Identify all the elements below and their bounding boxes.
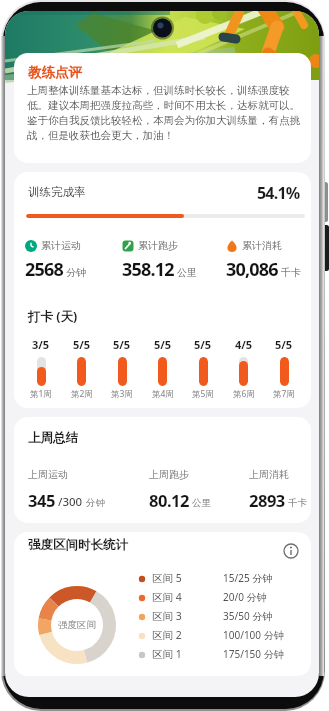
staticText: 强度区间时长统计 [28,537,128,553]
staticText: 第3周 [111,388,133,400]
staticText: 训练完成率 [28,185,86,199]
staticText: 上周总结 [28,430,78,446]
staticText: 5/5 [154,337,172,352]
staticText: 第7周 [273,388,295,400]
staticText: 4/5 [235,337,253,352]
staticText: 强度区间 [58,619,96,631]
staticText: 2568 [25,257,63,282]
staticText: 上周跑步 [149,468,189,481]
staticText: 分钟 [66,266,86,279]
staticText: 15/25 分钟 [223,571,273,585]
staticText: 区间 4 [152,590,182,604]
staticText: 5/5 [73,337,91,352]
staticText: 358.12 [122,257,174,282]
staticText: /300 [55,494,83,510]
staticText: 100/100 分钟 [223,628,284,642]
staticText: 80.12 [149,489,189,511]
staticText: 第5周 [192,388,214,400]
staticText: 第4周 [152,388,174,400]
staticText: 累计跑步 [138,239,178,252]
staticText: 5/5 [194,337,212,352]
staticText: 教练点评 [28,64,82,81]
staticText: 千卡 [288,497,307,509]
staticText: 区间 5 [152,571,182,585]
staticText: 上周整体训练量基本达标，但训练时长较长，训练强度较 低。建议本周把强度拉高些，时… [27,84,300,142]
staticText: 分钟 [86,497,105,509]
button[interactable]: 强度区间时长统计 [14,532,311,676]
staticText: 打卡 (天) [28,308,78,325]
button[interactable]: 教练点评 [14,53,311,163]
button[interactable] [282,542,300,560]
staticText: 千卡 [281,266,301,279]
staticText: 公里 [177,266,197,279]
staticText: 5/5 [275,337,293,352]
button[interactable]: 训练完成率 [14,172,311,408]
staticText: 累计消耗 [242,239,282,252]
staticText: 累计运动 [41,239,81,252]
staticText: 54.1% [257,182,300,204]
staticText: 5/5 [113,337,131,352]
staticText: 公里 [192,497,211,509]
staticText: 345 [28,489,55,511]
staticText: 30,086 [226,257,278,282]
staticText: 区间 1 [152,647,182,661]
staticText: 区间 2 [152,628,182,642]
staticText: 第6周 [233,388,255,400]
staticText: 上周消耗 [249,468,289,481]
staticText: 上周运动 [28,468,68,481]
staticText: 35/50 分钟 [223,609,273,623]
staticText: 3/5 [32,337,50,352]
staticText: 2893 [249,489,285,511]
staticText: 区间 3 [152,609,182,623]
button[interactable]: 上周总结 [14,417,311,523]
staticText: 20/0 分钟 [223,590,267,604]
staticText: 第1周 [30,388,52,400]
staticText: 第2周 [71,388,93,400]
staticText: 175/150 分钟 [223,647,284,661]
